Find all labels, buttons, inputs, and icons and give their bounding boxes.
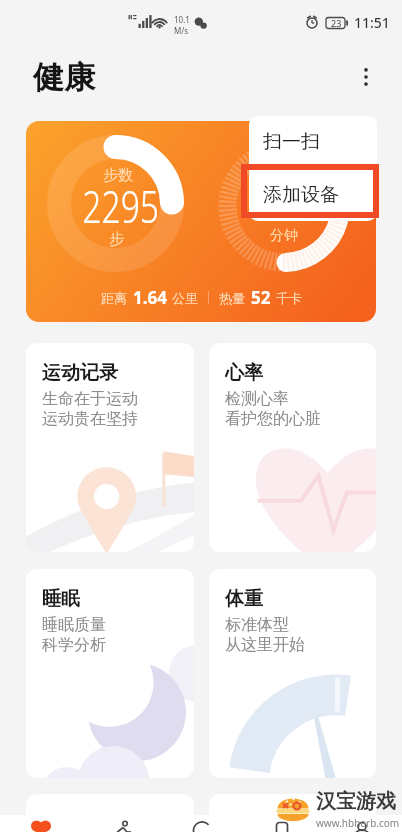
- staticText: 距离: [101, 290, 127, 306]
- button[interactable]: Me: [341, 815, 383, 832]
- staticText: 添加设备: [263, 183, 339, 207]
- button[interactable]: Devices: [261, 815, 303, 832]
- staticText: 10.1: [174, 14, 190, 25]
- button[interactable]: [209, 794, 376, 824]
- staticText: 步: [109, 230, 124, 248]
- button[interactable]: 添加设备: [249, 168, 377, 221]
- staticText: 检测心率 看护您的心脏: [225, 389, 321, 429]
- staticText: M/s: [174, 25, 189, 36]
- button[interactable]: 心率: [209, 343, 376, 552]
- button[interactable]: 睡眠: [26, 569, 194, 778]
- button[interactable]: 扫一扫: [249, 116, 377, 168]
- button[interactable]: More options: [346, 57, 386, 97]
- staticText: www.hbherb.com: [316, 816, 400, 830]
- staticText: 汉宝游戏: [316, 789, 396, 814]
- staticText: 公里: [172, 290, 198, 306]
- staticText: 睡眠: [42, 587, 80, 611]
- staticText: 体重: [225, 587, 263, 611]
- staticText: 2295: [82, 176, 160, 230]
- staticText: 心率: [225, 361, 263, 385]
- staticText: 睡眠质量 科学分析: [42, 615, 106, 655]
- staticText: 步数: [103, 166, 133, 184]
- staticText: 千卡: [276, 290, 302, 306]
- staticText: 扫一扫: [263, 130, 320, 154]
- button[interactable]: 体重: [209, 569, 376, 778]
- button[interactable]: [26, 794, 194, 824]
- staticText: 生命在于运动 运动贵在坚持: [42, 389, 138, 429]
- staticText: 热量: [219, 290, 245, 306]
- staticText: 11:51: [354, 13, 390, 32]
- button[interactable]: 步数: [26, 121, 376, 322]
- staticText: 运动记录: [42, 361, 118, 385]
- staticText: 标准体型 从这里开始: [225, 615, 305, 655]
- staticText: 1.64: [133, 286, 167, 309]
- staticText: 23: [331, 17, 342, 29]
- button[interactable]: 运动记录: [26, 343, 194, 552]
- button[interactable]: Discover: [181, 815, 223, 832]
- button[interactable]: Exercise: [101, 815, 143, 832]
- button[interactable]: Health: [20, 815, 62, 832]
- staticText: 52: [251, 286, 271, 309]
- staticText: 分钟: [270, 227, 298, 245]
- staticText: 健康: [33, 58, 95, 97]
